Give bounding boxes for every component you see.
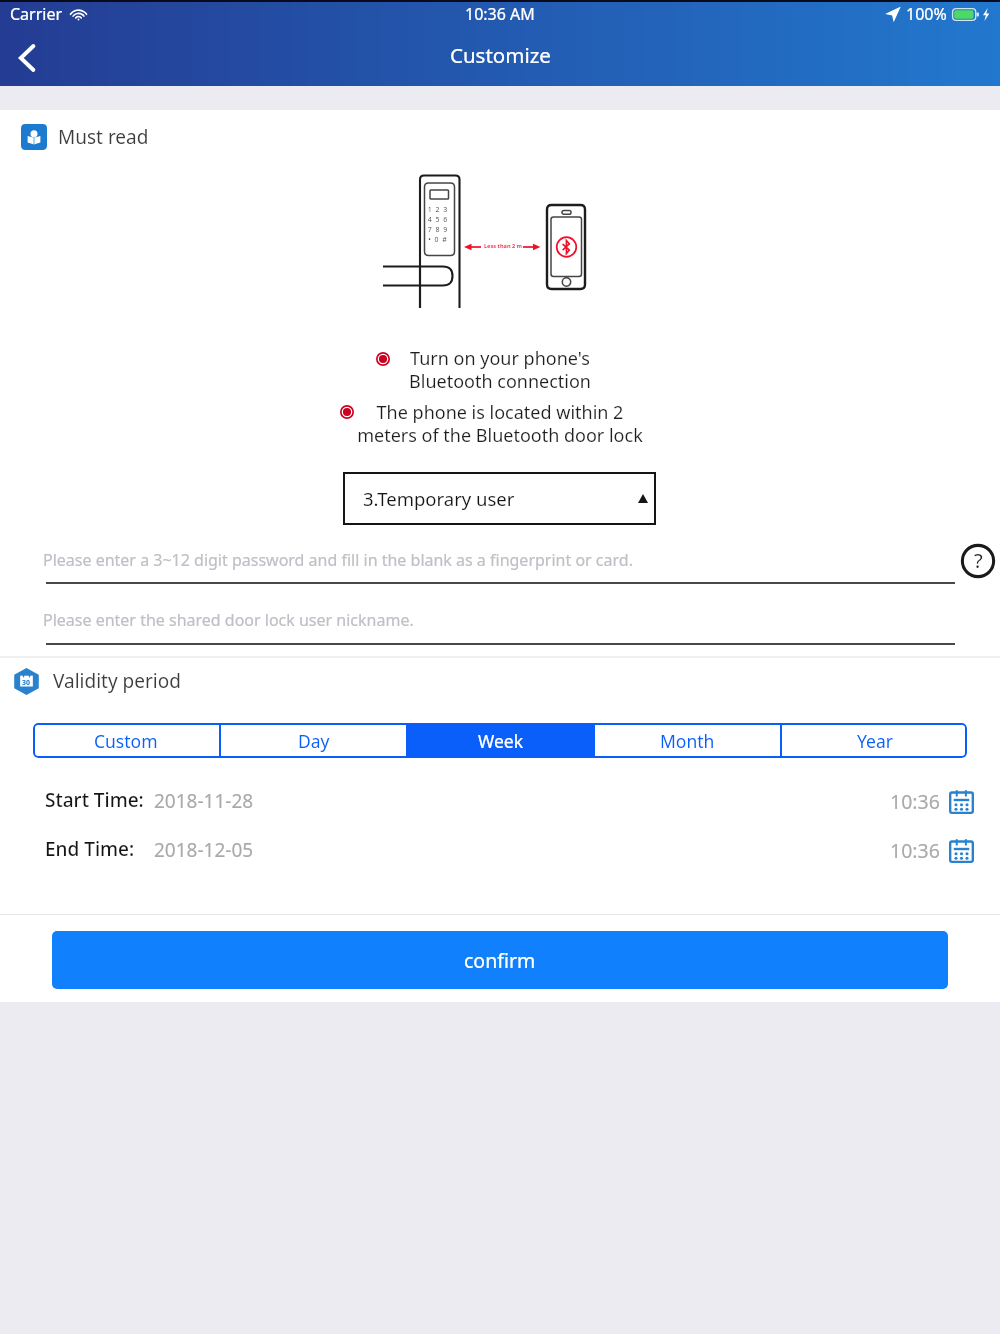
staticText: 2018-12-05	[154, 837, 254, 863]
staticText: 3.Temporary user	[363, 486, 515, 511]
button[interactable]: Pick date	[946, 835, 976, 865]
button[interactable]: confirm	[52, 931, 948, 989]
staticText: Please enter the shared door lock user n…	[43, 609, 414, 631]
button[interactable]: Must read	[0, 110, 1000, 164]
staticText: Custom	[94, 729, 158, 753]
staticText: ?	[974, 547, 983, 574]
button[interactable]: Pick date	[946, 786, 976, 816]
button[interactable]: Week	[408, 723, 593, 758]
staticText: Must read	[58, 124, 149, 150]
staticText: Start Time:	[45, 787, 144, 813]
staticText: 10:36	[890, 788, 940, 815]
staticText: 100%	[906, 3, 947, 25]
staticText: The phone is located within 2 meters of …	[330, 400, 670, 447]
staticText: 10:36 AM	[465, 3, 535, 25]
staticText: 4 5 6	[424, 215, 451, 225]
button[interactable]: Custom	[33, 723, 219, 758]
staticText: Month	[660, 729, 715, 753]
button[interactable]: Year	[782, 723, 967, 758]
staticText: Turn on your phone's Bluetooth connectio…	[330, 346, 670, 393]
button[interactable]: Month	[595, 723, 780, 758]
staticText: 10:36	[890, 837, 940, 864]
staticText: 2018-11-28	[154, 788, 254, 814]
staticText: Year	[857, 729, 893, 753]
staticText: confirm	[464, 947, 536, 974]
staticText: 1 2 3	[424, 205, 451, 215]
staticText: Carrier	[10, 3, 63, 25]
staticText: • 0 #	[424, 235, 451, 245]
staticText: End Time:	[45, 836, 135, 862]
button[interactable]: 3.Temporary user	[343, 472, 656, 525]
staticText: Week	[478, 729, 524, 753]
staticText: 7 8 9	[424, 225, 451, 235]
staticText: Please enter a 3~12 digit password and f…	[43, 549, 633, 571]
staticText: 30	[22, 678, 31, 688]
button[interactable]: Back	[0, 30, 56, 86]
staticText: Validity period	[53, 668, 181, 694]
button[interactable]: Start Time:	[45, 780, 955, 822]
button[interactable]: End Time:	[45, 829, 955, 871]
button[interactable]: Help	[958, 541, 998, 581]
staticText: Less than 2 m	[482, 242, 524, 250]
button[interactable]: Day	[221, 723, 406, 758]
staticText: Customize	[450, 41, 551, 69]
staticText: Day	[298, 729, 330, 753]
